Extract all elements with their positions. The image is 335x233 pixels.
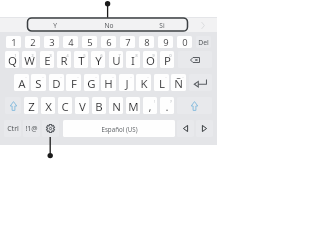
button[interactable]: ´	[31, 74, 46, 91]
staticText: J	[125, 76, 129, 91]
button[interactable]: Space	[63, 120, 175, 137]
staticText: X	[45, 99, 52, 114]
staticText: I	[131, 53, 135, 68]
staticText: 4	[66, 53, 69, 58]
button[interactable]: Delete	[196, 36, 211, 48]
staticText: 6	[106, 36, 112, 48]
staticText: 7	[125, 36, 131, 48]
staticText: Y	[53, 21, 57, 30]
button[interactable]: 7	[109, 51, 123, 68]
button[interactable]: Enter	[189, 74, 212, 91]
staticText: .	[165, 99, 169, 114]
button[interactable]: Shift	[5, 97, 21, 114]
button[interactable]: Shift	[177, 97, 212, 114]
staticText: !	[154, 99, 155, 104]
staticText: P	[164, 53, 171, 68]
button[interactable]: Si	[135, 18, 188, 32]
button[interactable]: Move cursor right	[196, 120, 213, 137]
button[interactable]: ´	[154, 74, 169, 91]
button[interactable]: ´	[66, 74, 81, 91]
button[interactable]: 6	[91, 51, 105, 68]
button[interactable]: ´	[84, 74, 99, 91]
button[interactable]: ?	[160, 97, 174, 114]
staticText: 7	[118, 53, 121, 58]
button[interactable]: 9	[158, 36, 173, 48]
staticText: K	[140, 76, 148, 91]
staticText: H	[104, 76, 113, 91]
button[interactable]: M	[126, 97, 140, 114]
button[interactable]: Move cursor left	[177, 120, 194, 137]
staticText: Si	[159, 21, 165, 30]
staticText: ´	[182, 76, 184, 81]
button[interactable]: 9	[143, 51, 157, 68]
button[interactable]: C	[58, 97, 72, 114]
staticText: 2	[31, 53, 34, 58]
button[interactable]: 0	[160, 51, 174, 68]
button[interactable]: ´	[49, 74, 64, 91]
staticText: 3	[49, 36, 55, 48]
staticText: 2	[30, 36, 36, 48]
staticText: ´	[77, 76, 79, 81]
button[interactable]: 2	[22, 51, 36, 68]
staticText: Q	[8, 53, 17, 68]
button[interactable]: !	[143, 97, 157, 114]
button[interactable]: 0	[177, 36, 192, 48]
staticText: 1	[14, 53, 17, 58]
button[interactable]: ´	[136, 74, 151, 91]
staticText: ´	[60, 76, 62, 81]
staticText: Ctrl	[7, 124, 19, 134]
staticText: !1@	[25, 124, 38, 134]
button[interactable]: No	[82, 18, 135, 32]
button[interactable]: 8	[139, 36, 154, 48]
button[interactable]: N	[109, 97, 123, 114]
button[interactable]: ´	[171, 74, 186, 91]
button[interactable]: 2	[25, 36, 40, 48]
button[interactable]: 5	[74, 51, 88, 68]
staticText: No	[104, 21, 114, 30]
staticText: D	[52, 76, 61, 91]
staticText: A	[18, 76, 26, 91]
staticText: 4	[68, 36, 74, 48]
staticText: 3	[49, 53, 52, 58]
staticText: ´	[25, 76, 27, 81]
button[interactable]: Z	[24, 97, 38, 114]
staticText: ´	[130, 76, 132, 81]
staticText: Español (US)	[101, 125, 138, 133]
button[interactable]: 1	[6, 36, 21, 48]
staticText: E	[44, 53, 51, 68]
staticText: 9	[152, 53, 155, 58]
staticText: 9	[163, 36, 169, 48]
staticText: M	[128, 99, 139, 114]
button[interactable]: 3	[40, 51, 54, 68]
staticText: Ñ	[174, 76, 183, 91]
staticText: ´	[165, 76, 167, 81]
button[interactable]: Y	[28, 18, 82, 32]
staticText: ´	[147, 76, 149, 81]
button[interactable]: V	[75, 97, 89, 114]
staticText: ?	[170, 99, 172, 104]
button[interactable]: ´	[14, 74, 29, 91]
button[interactable]: 4	[57, 51, 71, 68]
button[interactable]: 8	[126, 51, 140, 68]
button[interactable]: ´	[119, 74, 134, 91]
button[interactable]: X	[41, 97, 55, 114]
button[interactable]: 6	[101, 36, 116, 48]
button[interactable]: 3	[44, 36, 59, 48]
button[interactable]: 5	[82, 36, 97, 48]
button[interactable]: 4	[63, 36, 78, 48]
button[interactable]: Settings	[42, 120, 59, 137]
staticText: Z	[28, 99, 35, 114]
staticText: L	[159, 76, 165, 91]
staticText: ´	[42, 76, 44, 81]
button[interactable]: ´	[101, 74, 116, 91]
button[interactable]: 1	[5, 51, 19, 68]
button[interactable]: Control	[4, 120, 21, 137]
button[interactable]: Symbols	[23, 120, 40, 137]
staticText: R	[60, 53, 68, 68]
button[interactable]: 7	[120, 36, 135, 48]
button[interactable]: Backspace	[178, 51, 212, 68]
staticText: Y	[95, 53, 102, 68]
staticText: Del	[198, 38, 209, 47]
button[interactable]: B	[92, 97, 106, 114]
